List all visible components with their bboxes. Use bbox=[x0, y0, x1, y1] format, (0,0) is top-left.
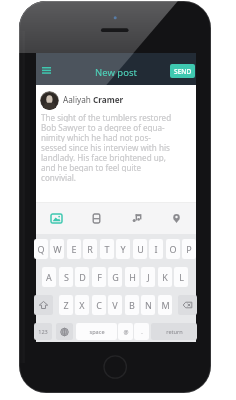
staticText: Aaliyah bbox=[63, 94, 94, 105]
staticText: N bbox=[145, 299, 152, 311]
button[interactable]: Add music bbox=[116, 202, 156, 234]
staticText: R bbox=[87, 243, 93, 255]
staticText: @ bbox=[123, 328, 129, 336]
button[interactable]: V bbox=[108, 295, 122, 315]
staticText: . bbox=[141, 328, 143, 336]
button[interactable]: space bbox=[76, 323, 117, 340]
button[interactable]: P bbox=[182, 239, 196, 259]
button[interactable]: K bbox=[158, 267, 172, 287]
button[interactable]: A bbox=[42, 267, 56, 287]
staticText: J bbox=[147, 271, 150, 283]
staticText: Bob Sawyer to a degree of equa- bbox=[41, 122, 165, 132]
button[interactable]: Z bbox=[59, 295, 73, 315]
staticText: B bbox=[129, 299, 135, 311]
button[interactable]: T bbox=[100, 239, 114, 259]
staticText: T bbox=[104, 243, 110, 255]
staticText: sessed since his interview with his bbox=[41, 142, 170, 152]
button[interactable]: O bbox=[166, 239, 180, 259]
staticText: H bbox=[129, 271, 136, 283]
staticText: I bbox=[154, 243, 158, 255]
staticText: SEND bbox=[174, 67, 192, 76]
button[interactable]: J bbox=[141, 267, 155, 287]
staticText: P bbox=[186, 243, 192, 255]
staticText: O bbox=[169, 243, 177, 255]
button[interactable]: Add photo bbox=[36, 202, 76, 234]
button[interactable]: G bbox=[108, 267, 122, 287]
staticText: V bbox=[112, 299, 118, 311]
staticText: E bbox=[71, 243, 77, 255]
button[interactable]: S bbox=[59, 267, 73, 287]
button[interactable]: I bbox=[149, 239, 163, 259]
staticText: Z bbox=[63, 299, 69, 311]
staticText: S bbox=[64, 271, 69, 283]
staticText: F bbox=[97, 271, 102, 283]
staticText: Cramer bbox=[93, 94, 124, 105]
staticText: D bbox=[79, 271, 86, 283]
button[interactable]: F bbox=[92, 267, 106, 287]
button[interactable]: SEND bbox=[170, 64, 195, 78]
button[interactable]: Add video bbox=[76, 202, 116, 234]
staticText: Y bbox=[120, 243, 126, 255]
button[interactable]: Q bbox=[34, 239, 48, 259]
button[interactable]: R bbox=[83, 239, 97, 259]
button[interactable]: Language bbox=[56, 323, 73, 340]
button[interactable]: 123 bbox=[34, 323, 52, 340]
staticText: space bbox=[89, 328, 105, 336]
staticText: landlady. His face brightened up, bbox=[41, 152, 166, 162]
button[interactable]: C bbox=[92, 295, 106, 315]
button[interactable]: M bbox=[158, 295, 172, 315]
staticText: Q bbox=[37, 243, 45, 255]
button[interactable]: D bbox=[75, 267, 89, 287]
staticText: The sight of the tumblers restored bbox=[41, 112, 172, 122]
staticText: nimity which he had not pos- bbox=[41, 132, 151, 142]
staticText: and he began to feel quite bbox=[41, 162, 142, 172]
button[interactable]: L bbox=[174, 267, 188, 287]
button[interactable]: return bbox=[151, 323, 197, 340]
button[interactable]: H bbox=[125, 267, 139, 287]
button[interactable]: Add location bbox=[156, 202, 196, 234]
staticText: L bbox=[179, 271, 184, 283]
staticText: G bbox=[112, 271, 119, 283]
button[interactable]: U bbox=[133, 239, 147, 259]
staticText: C bbox=[96, 299, 102, 311]
button[interactable]: X bbox=[75, 295, 89, 315]
button[interactable]: . bbox=[134, 323, 149, 340]
staticText: 123 bbox=[38, 328, 48, 336]
button[interactable]: B bbox=[125, 295, 139, 315]
button[interactable]: Backspace bbox=[178, 295, 197, 315]
staticText: K bbox=[162, 271, 168, 283]
staticText: convivial. bbox=[41, 172, 76, 182]
staticText: A bbox=[46, 271, 52, 283]
button[interactable]: @ bbox=[118, 323, 133, 340]
button[interactable]: Menu bbox=[38, 63, 54, 77]
button[interactable]: E bbox=[67, 239, 81, 259]
staticText: M bbox=[161, 299, 170, 311]
staticText: U bbox=[137, 243, 144, 255]
staticText: return bbox=[166, 328, 183, 336]
button[interactable]: Y bbox=[116, 239, 130, 259]
staticText: X bbox=[79, 299, 85, 311]
staticText: New post bbox=[95, 66, 137, 79]
staticText: W bbox=[53, 243, 62, 255]
button[interactable]: N bbox=[141, 295, 155, 315]
button[interactable]: Shift bbox=[34, 295, 53, 315]
button[interactable]: W bbox=[50, 239, 64, 259]
